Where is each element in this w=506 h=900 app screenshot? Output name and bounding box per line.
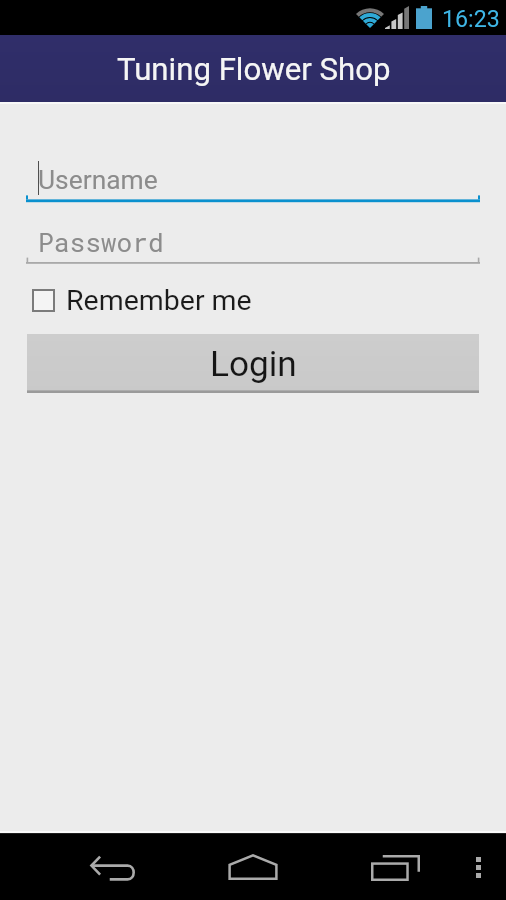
staticText: Password bbox=[38, 225, 164, 260]
button[interactable]: Home bbox=[219, 841, 287, 893]
staticText: 16:23 bbox=[442, 5, 500, 32]
staticText: Tuning Flower Shop bbox=[117, 51, 391, 88]
button[interactable]: Back bbox=[79, 843, 147, 895]
staticText: Login bbox=[210, 343, 297, 384]
button[interactable]: Login bbox=[27, 334, 479, 393]
staticText: Remember me bbox=[66, 284, 252, 317]
button[interactable]: Password bbox=[26, 218, 480, 270]
button[interactable]: Username bbox=[26, 155, 480, 207]
button[interactable]: More options bbox=[456, 841, 500, 893]
button[interactable]: Recent apps bbox=[361, 842, 429, 894]
button[interactable]: Remember me bbox=[26, 283, 252, 318]
staticText: Username bbox=[38, 165, 158, 196]
